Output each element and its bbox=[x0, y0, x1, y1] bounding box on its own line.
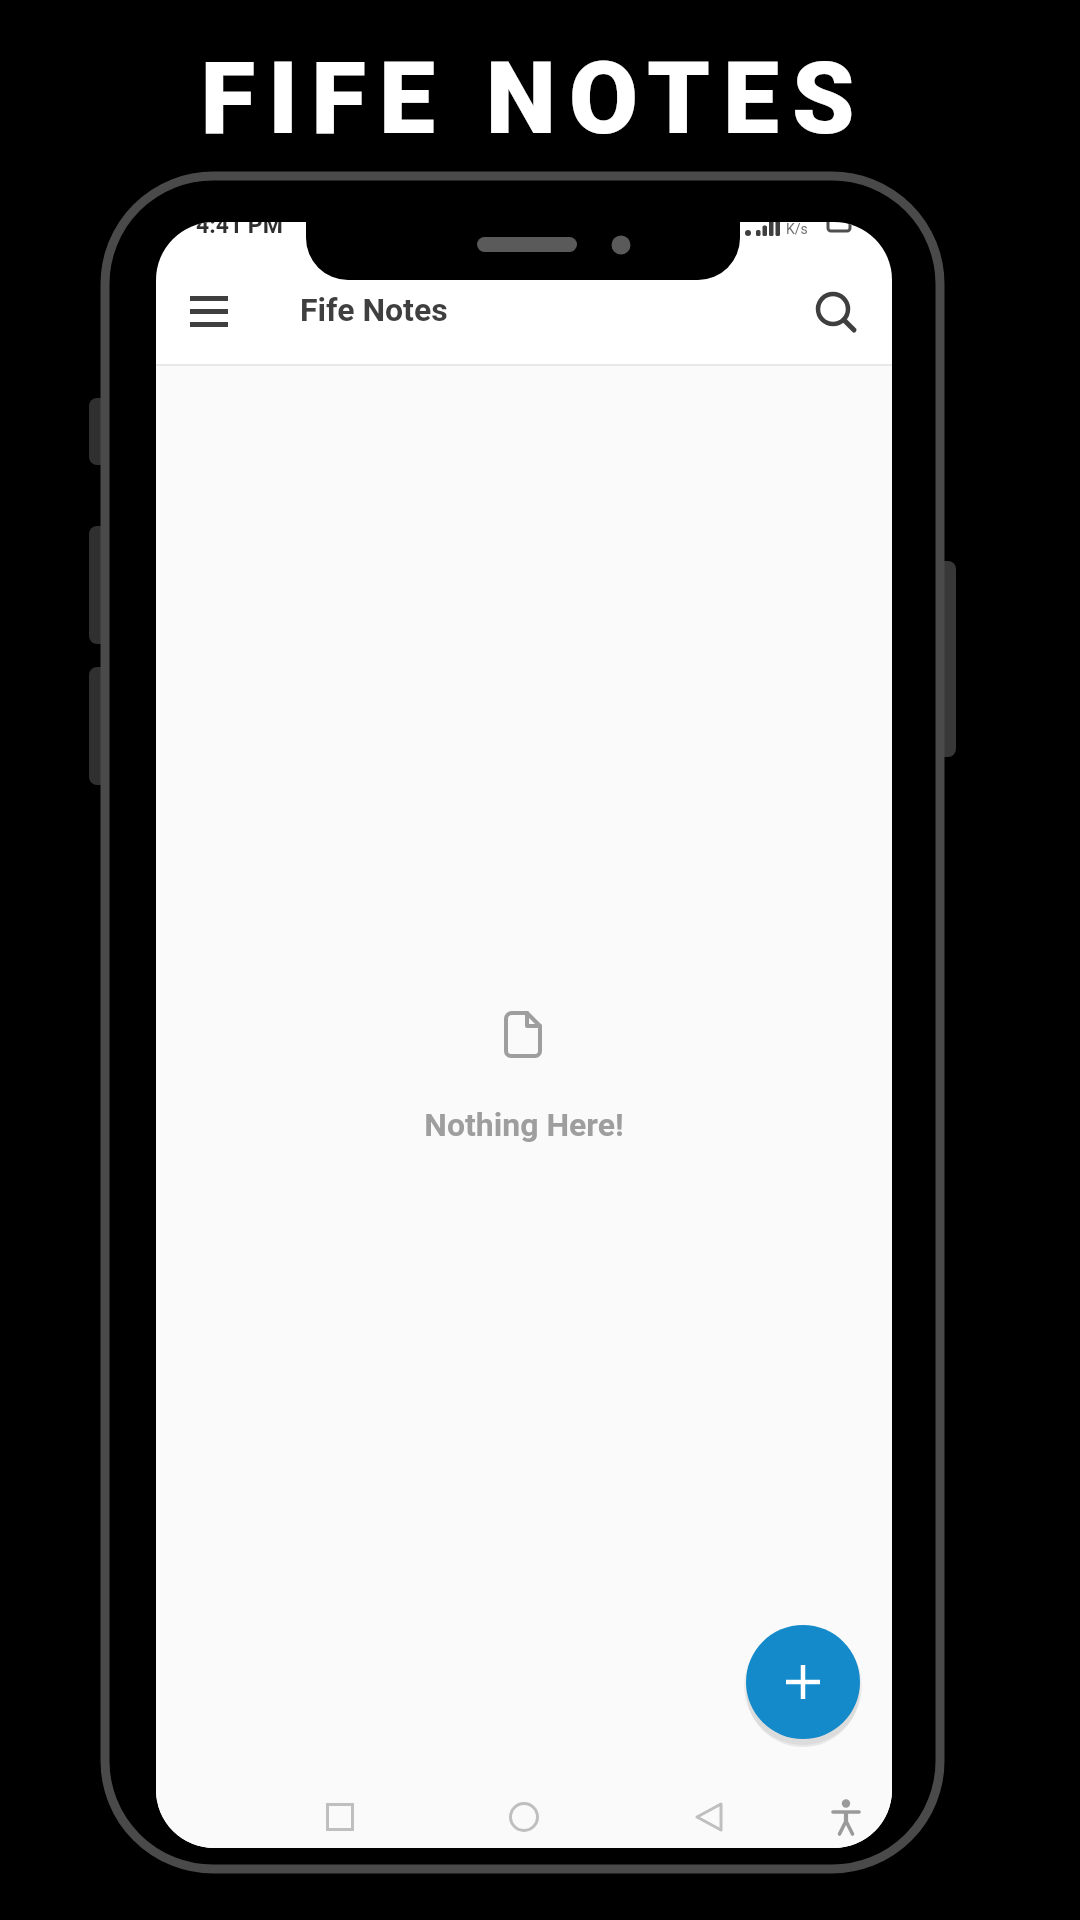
staticText: K/s bbox=[786, 222, 808, 237]
button[interactable] bbox=[679, 1789, 739, 1845]
button[interactable] bbox=[180, 288, 238, 336]
staticText: FIFE NOTES bbox=[0, 40, 1074, 157]
staticText: Fife Notes bbox=[300, 291, 448, 329]
staticText: Nothing Here! bbox=[156, 1106, 892, 1144]
button[interactable] bbox=[494, 1789, 554, 1845]
button[interactable] bbox=[746, 1625, 860, 1739]
staticText: 4:41 PM bbox=[196, 222, 283, 239]
button[interactable] bbox=[806, 282, 866, 342]
button[interactable] bbox=[816, 1789, 876, 1845]
button[interactable] bbox=[310, 1789, 370, 1845]
